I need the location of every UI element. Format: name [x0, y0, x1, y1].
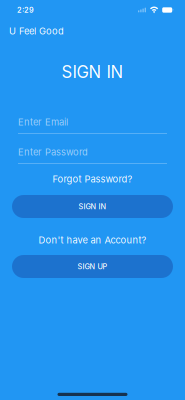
staticText: Don't have an Account? [38, 234, 146, 246]
button[interactable]: Enter Password [18, 146, 167, 164]
button[interactable]: Forgot Password? [12, 173, 173, 185]
button[interactable]: SIGN UP [12, 255, 173, 278]
staticText: SIGN IN [78, 202, 106, 211]
staticText: Enter Password [18, 146, 88, 158]
button[interactable]: SIGN IN [12, 195, 173, 218]
staticText: Forgot Password? [52, 173, 132, 185]
staticText: SIGN IN [61, 62, 123, 82]
staticText: 2:29 [17, 6, 34, 14]
button[interactable]: Enter Email [18, 116, 167, 134]
staticText: Enter Email [18, 116, 68, 128]
staticText: SIGN UP [77, 262, 107, 271]
staticText: U Feel Good [9, 25, 64, 37]
